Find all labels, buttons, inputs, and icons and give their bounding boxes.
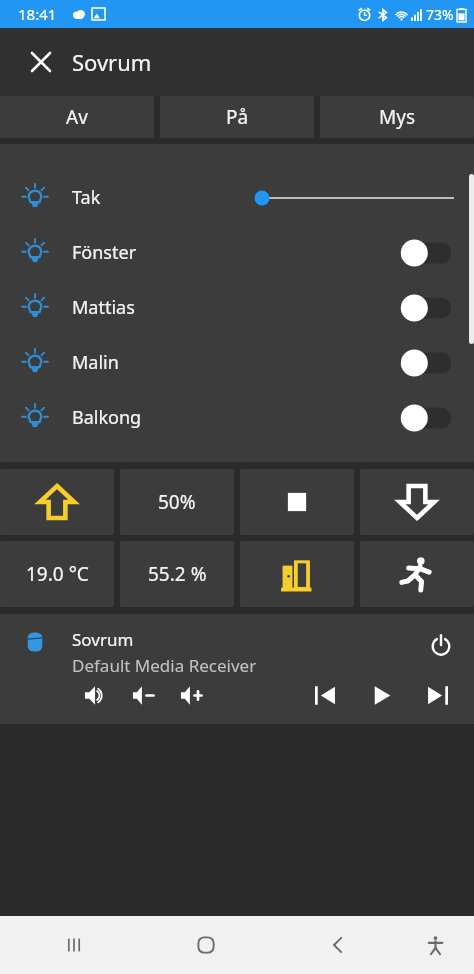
button[interactable]: Back bbox=[272, 916, 404, 974]
button[interactable]: Toggle Mattias bbox=[400, 295, 454, 321]
button[interactable]: Home bbox=[140, 916, 272, 974]
button[interactable]: Fönster bbox=[0, 225, 474, 280]
button[interactable]: Toggle Fönster bbox=[400, 240, 454, 266]
button[interactable]: Accessibility bbox=[404, 916, 466, 974]
button[interactable]: Av bbox=[0, 96, 154, 138]
button[interactable]: Stop bbox=[240, 469, 354, 535]
staticText: 19.0 °C bbox=[26, 561, 89, 587]
button[interactable]: Balkong bbox=[0, 390, 474, 445]
button[interactable]: 50% bbox=[120, 469, 234, 535]
staticText: 50% bbox=[158, 489, 196, 515]
button[interactable]: Door bbox=[240, 541, 354, 607]
staticText: Mys bbox=[379, 104, 416, 130]
button[interactable]: Volume bbox=[80, 680, 110, 710]
staticText: Sovrum bbox=[72, 47, 152, 77]
button[interactable]: Volume down bbox=[128, 680, 158, 710]
button[interactable]: Up bbox=[0, 469, 114, 535]
staticText: Av bbox=[66, 104, 88, 130]
staticText: Malin bbox=[72, 350, 400, 375]
button[interactable]: Tak bbox=[0, 170, 474, 225]
button[interactable]: Down bbox=[360, 469, 474, 535]
staticText: 18:41 bbox=[18, 4, 57, 24]
staticText: Balkong bbox=[72, 405, 400, 430]
button[interactable]: Power bbox=[424, 628, 458, 662]
button[interactable]: Previous bbox=[310, 680, 340, 710]
button[interactable]: 19.0 °C bbox=[0, 541, 114, 607]
button[interactable]: Toggle Balkong bbox=[400, 405, 454, 431]
staticText: 73% bbox=[426, 5, 454, 24]
button[interactable]: Next bbox=[422, 680, 452, 710]
button[interactable]: Malin bbox=[0, 335, 474, 390]
button[interactable]: Close bbox=[24, 45, 58, 79]
button[interactable]: 55.2 % bbox=[120, 541, 234, 607]
button[interactable]: Mattias bbox=[0, 280, 474, 335]
button[interactable]: Mys bbox=[320, 96, 474, 138]
button[interactable]: På bbox=[160, 96, 314, 138]
button[interactable]: Toggle Malin bbox=[400, 350, 454, 376]
button[interactable]: Motion bbox=[360, 541, 474, 607]
button[interactable]: Play bbox=[366, 680, 396, 710]
staticText: På bbox=[226, 104, 249, 130]
staticText: Tak bbox=[72, 185, 252, 210]
staticText: Fönster bbox=[72, 240, 400, 265]
staticText: Default Media Receiver bbox=[72, 654, 257, 677]
staticText: Sovrum bbox=[72, 628, 134, 651]
button[interactable]: Recents bbox=[8, 916, 140, 974]
staticText: Mattias bbox=[72, 295, 400, 320]
staticText: 55.2 % bbox=[148, 561, 207, 587]
button[interactable]: Volume up bbox=[176, 680, 206, 710]
